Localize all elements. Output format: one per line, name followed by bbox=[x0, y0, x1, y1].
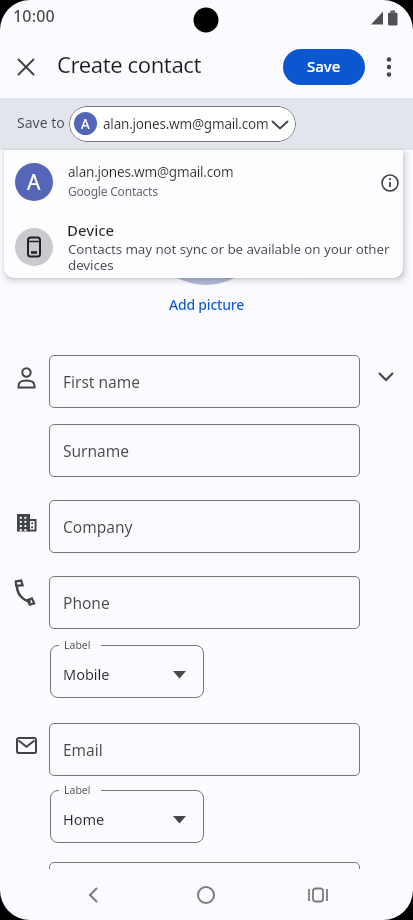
staticText: alan.jones.wm@gmail.com bbox=[103, 115, 269, 133]
button[interactable] bbox=[14, 55, 38, 79]
staticText: First name bbox=[63, 371, 141, 392]
staticText: A bbox=[81, 115, 90, 133]
staticText: alan.jones.wm@gmail.com bbox=[68, 163, 234, 181]
staticText: Save bbox=[307, 56, 341, 76]
staticText: Mobile bbox=[63, 664, 110, 684]
staticText: Device bbox=[67, 220, 115, 240]
button[interactable] bbox=[372, 165, 403, 201]
staticText: A bbox=[27, 168, 41, 197]
button[interactable]: Company bbox=[49, 500, 360, 553]
staticText: Phone bbox=[63, 592, 110, 613]
staticText: Google Contacts bbox=[68, 183, 158, 199]
staticText: Add picture bbox=[169, 295, 245, 314]
button[interactable]: Save bbox=[283, 49, 365, 85]
button[interactable]: Phone bbox=[49, 576, 360, 629]
staticText: Contacts may not sync or be available on… bbox=[68, 240, 390, 274]
staticText: Surname bbox=[63, 440, 129, 461]
staticText: Label bbox=[64, 783, 91, 797]
button[interactable]: Add picture bbox=[0, 293, 413, 315]
button[interactable]: Home bbox=[50, 790, 204, 843]
button[interactable]: Mobile bbox=[50, 645, 204, 698]
staticText: 10:00 bbox=[13, 5, 55, 27]
staticText: Email bbox=[63, 739, 103, 760]
staticText: Label bbox=[64, 638, 91, 652]
button[interactable]: Email bbox=[49, 723, 360, 776]
button[interactable]: First name bbox=[49, 355, 360, 408]
button[interactable]: A bbox=[69, 106, 296, 142]
button[interactable] bbox=[186, 875, 226, 915]
staticText: Save to bbox=[17, 113, 65, 132]
button[interactable] bbox=[73, 875, 113, 915]
button[interactable]: A bbox=[4, 150, 403, 214]
staticText: Company bbox=[63, 516, 133, 537]
staticText: Home bbox=[63, 809, 105, 829]
button[interactable]: Surname bbox=[49, 424, 360, 477]
button[interactable] bbox=[368, 359, 404, 395]
button[interactable] bbox=[377, 55, 401, 79]
button[interactable] bbox=[298, 875, 338, 915]
button[interactable]: Device bbox=[4, 214, 403, 278]
staticText: Create contact bbox=[57, 49, 202, 79]
